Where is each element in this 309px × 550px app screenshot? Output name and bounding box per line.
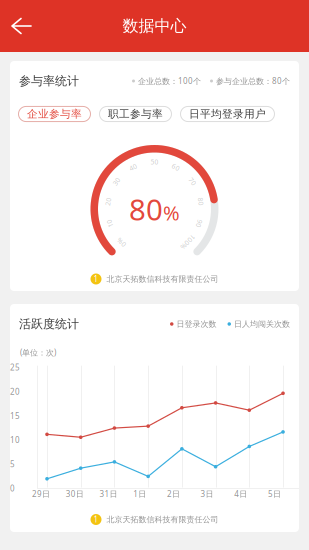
staticText: % xyxy=(163,199,180,226)
staticText: 活跃度统计 xyxy=(19,317,79,331)
staticText: 40 xyxy=(129,163,137,172)
staticText: 北京天拓数信科技有限责任公司 xyxy=(106,515,218,524)
button[interactable]: 企业参与率 xyxy=(18,106,91,122)
button[interactable]: 职工参与率 xyxy=(99,106,172,122)
staticText: (单位：次) xyxy=(20,347,56,358)
staticText: 5 xyxy=(10,459,15,469)
staticText: 70 xyxy=(188,177,196,186)
staticText: 10 xyxy=(10,435,20,445)
staticText: 25 xyxy=(10,362,20,373)
staticText: 31日 xyxy=(99,488,117,499)
staticText: 职工参与率 xyxy=(108,107,163,120)
staticText: 参与企业总数：80个 xyxy=(216,76,290,86)
staticText: 参与率统计 xyxy=(19,74,79,88)
staticText: 日平均登录用户 xyxy=(189,107,266,120)
staticText: 30日 xyxy=(66,488,84,499)
staticText: 90 xyxy=(195,219,203,228)
staticText: 企业参与率 xyxy=(27,107,82,120)
staticText: 日人均闯关次数 xyxy=(234,319,290,329)
staticText: 5日 xyxy=(268,488,281,499)
staticText: 4日 xyxy=(234,488,247,499)
staticText: 30 xyxy=(112,177,120,186)
staticText: 80 xyxy=(197,197,205,206)
staticText: 20 xyxy=(104,197,112,206)
staticText: 15 xyxy=(10,410,20,421)
staticText: 100% xyxy=(179,238,197,247)
staticText: 企业总数：100个 xyxy=(138,76,201,86)
staticText: 3日 xyxy=(201,488,214,499)
staticText: 80 xyxy=(129,189,163,228)
staticText: 北京天拓数信科技有限责任公司 xyxy=(106,274,218,284)
staticText: 2日 xyxy=(167,488,180,499)
staticText: 29日 xyxy=(32,488,50,499)
staticText: 0% xyxy=(116,238,126,247)
staticText: 50 xyxy=(150,158,158,166)
staticText: 0 xyxy=(10,483,15,494)
staticText: 数据中心 xyxy=(122,16,186,36)
button[interactable]: 返回 xyxy=(0,5,42,47)
staticText: 60 xyxy=(172,163,180,172)
staticText: 1 xyxy=(93,274,98,284)
staticText: 20 xyxy=(10,386,20,397)
staticText: 1 xyxy=(93,514,98,525)
staticText: 日登录次数 xyxy=(176,319,216,329)
staticText: 10 xyxy=(106,219,114,228)
button[interactable]: 日平均登录用户 xyxy=(180,106,275,122)
staticText: 1日 xyxy=(133,488,146,499)
